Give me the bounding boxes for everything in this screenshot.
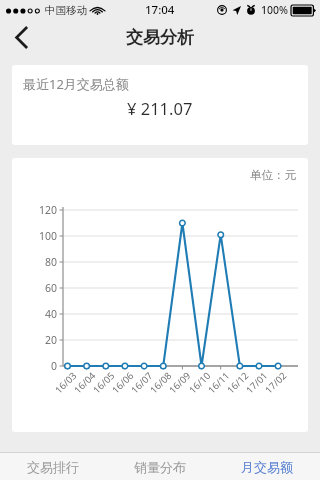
staticText: 100% [261,3,288,17]
staticText: 17/01 [243,369,271,396]
staticText: 60 [12,281,57,295]
staticText: 16/08 [147,369,175,396]
staticText: 17/02 [262,369,290,396]
staticText: 0 [12,359,57,373]
staticText: 交易排行 [27,459,79,475]
staticText: 销量分布 [134,459,186,475]
staticText: 16/09 [166,369,194,396]
staticText: 16/12 [224,369,252,396]
staticText: 120 [12,203,57,217]
staticText: 16/04 [71,369,99,396]
staticText: 100 [12,229,57,243]
staticText: 最近12月交易总额 [23,75,129,93]
staticText: 20 [12,333,57,347]
staticText: 交易分析 [126,27,194,48]
staticText: 月交易额 [241,459,293,475]
staticText: 单位：元 [250,168,296,182]
button[interactable]: 销量分布 [106,453,213,480]
staticText: 16/10 [186,369,214,396]
button[interactable]: 交易排行 [0,453,106,480]
button[interactable]: Back [0,20,42,54]
staticText: 80 [12,255,57,269]
staticText: 17:04 [145,2,175,18]
staticText: 16/05 [90,369,118,396]
staticText: 16/06 [109,369,137,396]
staticText: 中国移动 [45,4,87,17]
staticText: 40 [12,307,57,321]
staticText: 16/03 [52,369,80,396]
staticText: ¥ 211.07 [127,97,193,119]
staticText: 16/11 [205,369,233,396]
staticText: 16/07 [128,369,156,396]
button[interactable]: 月交易额 [213,453,320,480]
button[interactable]: 最近12月交易总额 [12,65,308,145]
